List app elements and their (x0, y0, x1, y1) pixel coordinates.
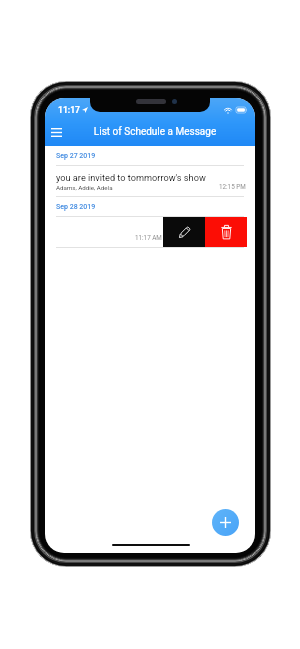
staticText: Sep 27 2019 (56, 152, 96, 160)
button[interactable]: Delete (205, 217, 247, 247)
staticText: you are invited to tommorrow's show (56, 172, 206, 183)
button[interactable]: Add schedule (212, 509, 239, 536)
staticText: 11:17 (58, 105, 80, 115)
staticText: 12:15 PM (219, 183, 246, 190)
staticText: 11:17 AM (135, 234, 162, 241)
button[interactable]: Edit (163, 217, 205, 247)
button[interactable]: Open navigation menu (46, 121, 66, 143)
button[interactable]: you are invited to tommorrow's show (45, 166, 255, 197)
staticText: Adams, Addie, Adela (56, 184, 113, 191)
staticText: Sep 28 2019 (56, 203, 96, 211)
staticText: List of Schedule a Message (66, 126, 244, 138)
